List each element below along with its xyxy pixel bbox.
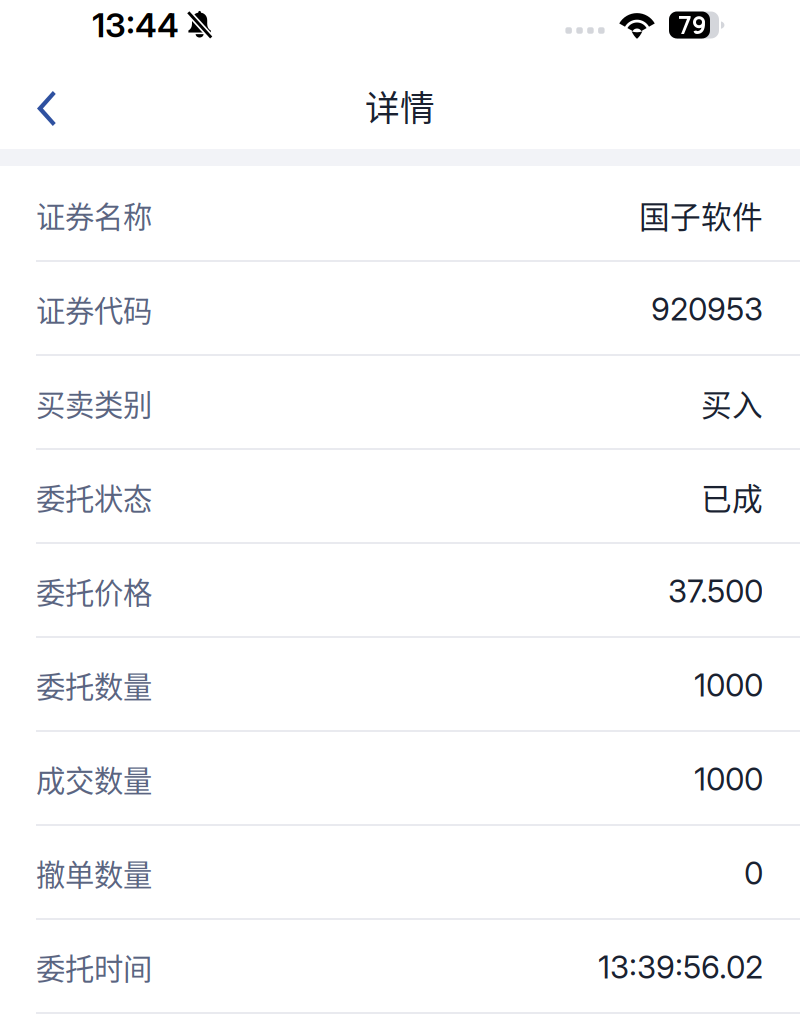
staticText: 委托数量	[36, 664, 152, 706]
staticText: 证券代码	[36, 288, 152, 330]
button[interactable]: 证券名称	[0, 168, 800, 262]
staticText: 撤单数量	[36, 852, 152, 894]
staticText: 国子软件	[639, 193, 763, 237]
staticText: 成交数量	[36, 758, 152, 800]
staticText: 委托时间	[36, 946, 152, 988]
button[interactable]: 委托时间	[0, 920, 800, 1014]
staticText: 证券名称	[36, 194, 152, 236]
staticText: 13:44	[92, 5, 179, 45]
button[interactable]: 委托状态	[0, 450, 800, 544]
staticText: 委托价格	[36, 570, 152, 612]
staticText: 买卖类别	[36, 382, 152, 424]
staticText: 0	[744, 854, 763, 892]
button[interactable]: 委托数量	[0, 638, 800, 732]
button[interactable]: 撤单数量	[0, 826, 800, 920]
button[interactable]: 证券代码	[0, 262, 800, 356]
button[interactable]: 买卖类别	[0, 356, 800, 450]
staticText: 13:39:56.02	[598, 948, 763, 986]
button[interactable]: Back	[0, 61, 89, 138]
staticText: 1000	[694, 760, 763, 798]
staticText: 1000	[694, 666, 763, 704]
staticText: 920953	[651, 290, 763, 328]
button[interactable]: 成交数量	[0, 732, 800, 826]
staticText: 委托状态	[36, 476, 152, 518]
staticText: 买入	[701, 381, 763, 425]
staticText: 37.500	[668, 572, 763, 610]
staticText: 详情	[365, 81, 435, 131]
button[interactable]: 委托价格	[0, 544, 800, 638]
staticText: 已成	[701, 475, 763, 519]
